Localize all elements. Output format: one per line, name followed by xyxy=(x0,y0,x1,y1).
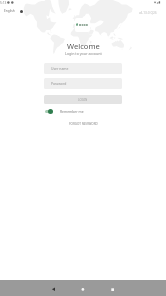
staticText: Password xyxy=(51,81,67,86)
button[interactable]: User name xyxy=(44,63,122,74)
staticText: User name xyxy=(51,66,69,71)
staticText: Remember me xyxy=(60,109,84,114)
button[interactable]: Password xyxy=(44,78,122,89)
staticText: v4.13.0 Q26 xyxy=(139,11,157,15)
staticText: Login to your account xyxy=(65,51,102,56)
button[interactable]: Back xyxy=(43,280,64,296)
staticText: FORGOT PASSWORD xyxy=(69,122,98,126)
staticText: LOGIN xyxy=(78,98,88,102)
other: Change language xyxy=(20,10,23,13)
button[interactable]: Remember me xyxy=(44,108,85,115)
staticText: English xyxy=(4,9,15,13)
button[interactable]: Home xyxy=(73,280,94,296)
button[interactable]: LOGIN xyxy=(44,95,122,104)
staticText: 5:13 xyxy=(0,1,7,5)
button[interactable]: Recent apps xyxy=(102,280,123,296)
staticText: Welcome xyxy=(67,41,100,51)
button[interactable]: FORGOT PASSWORD xyxy=(65,120,102,128)
button[interactable]: English xyxy=(3,8,24,14)
